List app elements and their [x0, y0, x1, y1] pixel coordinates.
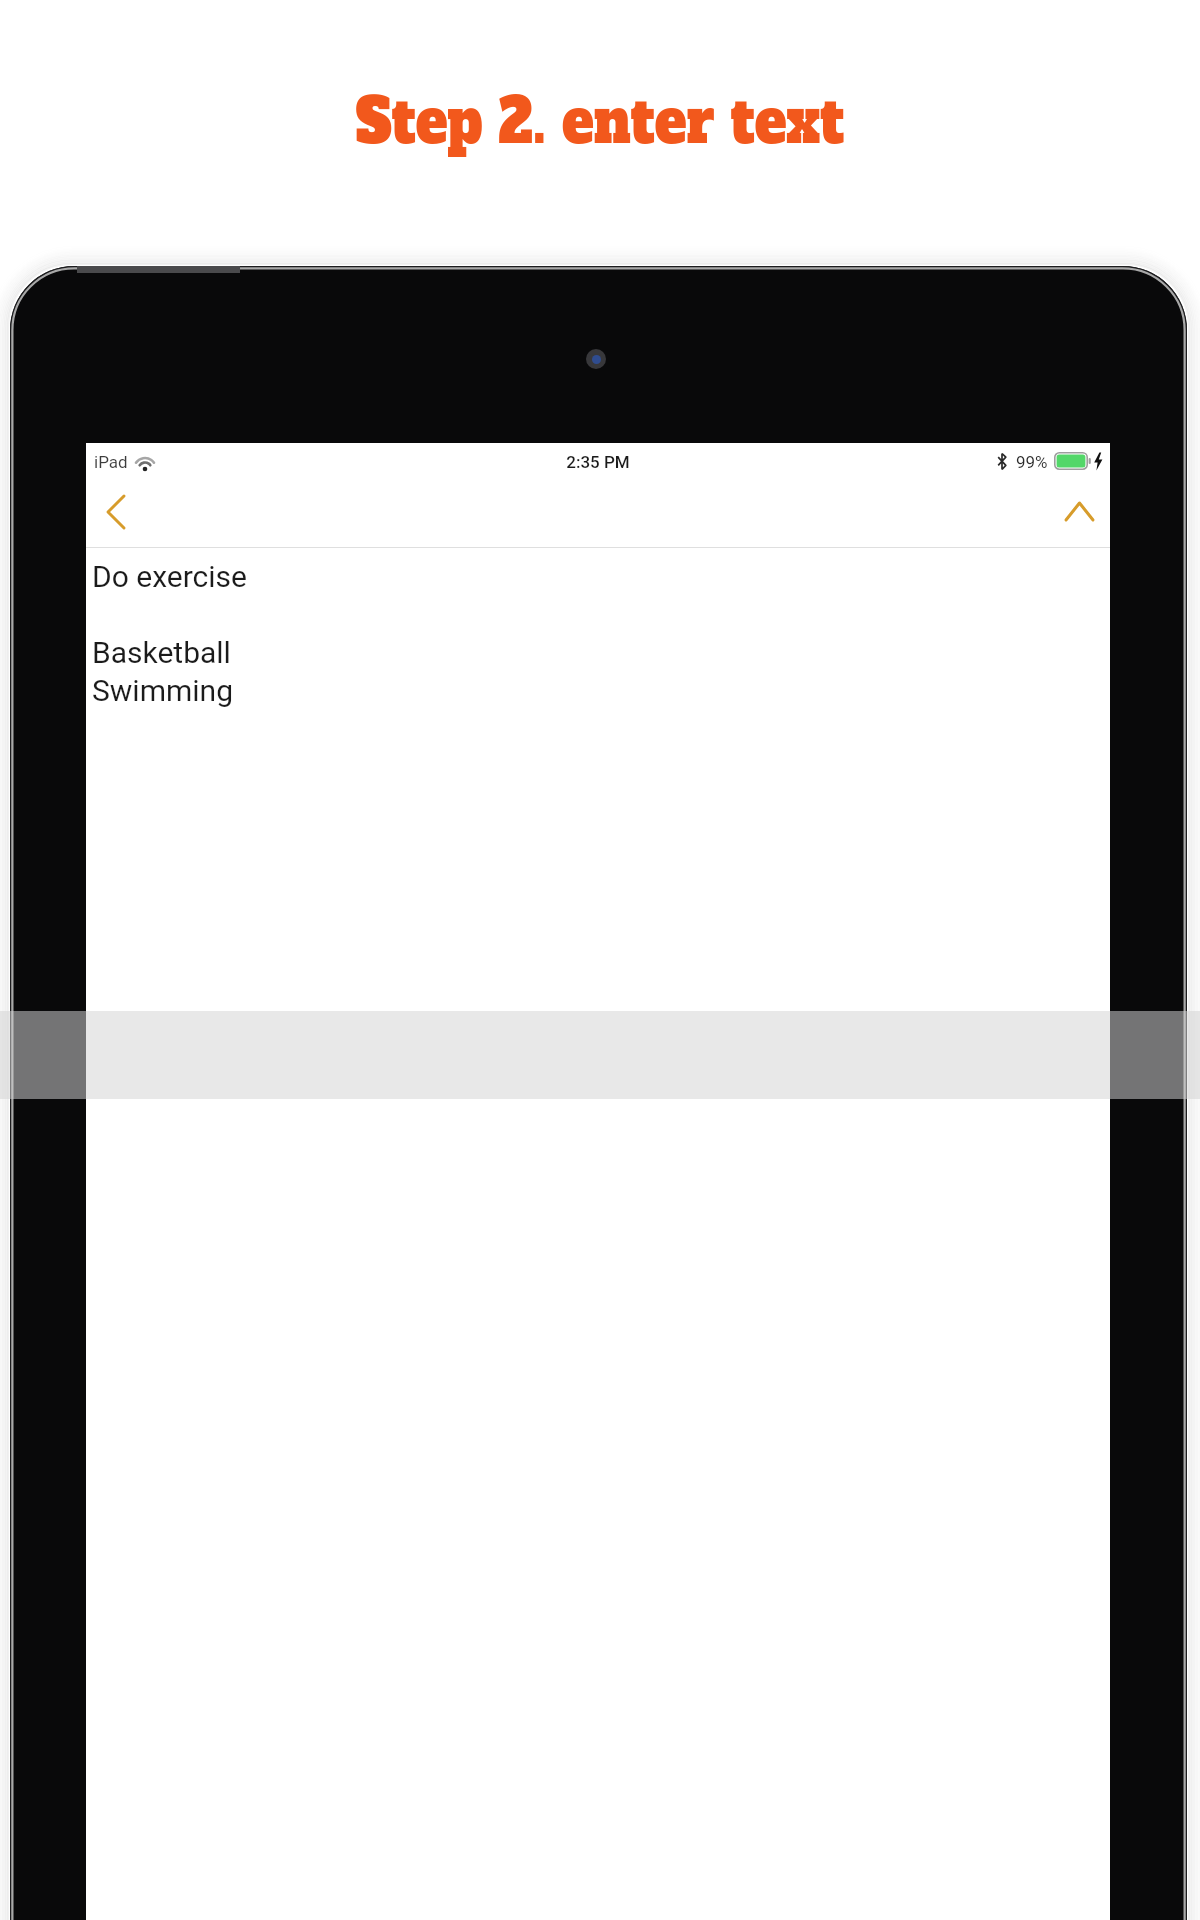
button[interactable] — [1052, 489, 1104, 529]
button[interactable] — [92, 483, 140, 541]
staticText: 2:35 PM — [86, 452, 1110, 472]
staticText: Step 2. enter text — [84, 79, 1116, 164]
button[interactable]: Do exercise Basketball Swimming — [92, 559, 247, 708]
staticText: iPad — [94, 452, 128, 472]
staticText: 99% — [1016, 452, 1048, 472]
